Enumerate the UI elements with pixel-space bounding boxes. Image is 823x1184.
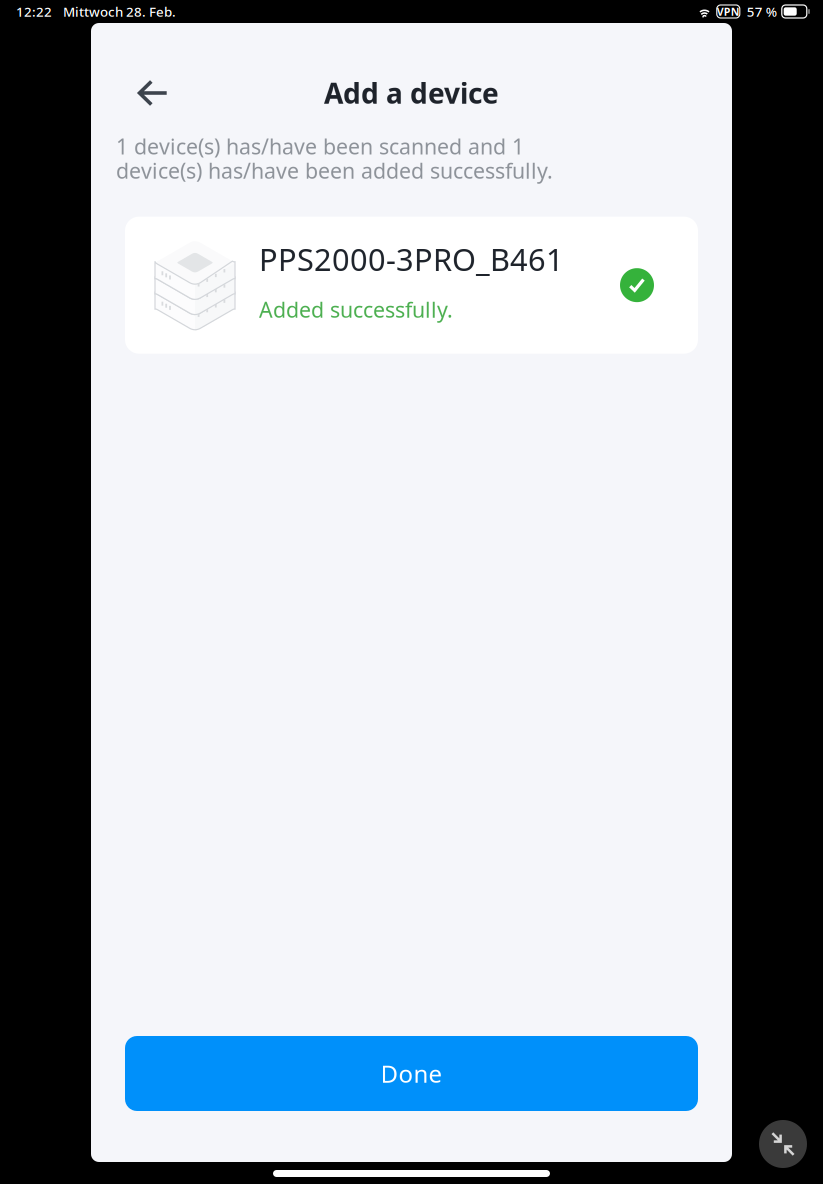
staticText: Add a device	[324, 74, 499, 112]
staticText: 57 %	[747, 3, 777, 20]
staticText: 12:22	[16, 3, 52, 20]
button[interactable]: Exit zoomed app	[759, 1120, 807, 1168]
staticText: PPS2000-3PRO_B461	[259, 239, 564, 279]
staticText: Added successfully.	[259, 295, 453, 324]
button[interactable]: Done	[125, 1036, 698, 1111]
button[interactable]: Back	[91, 64, 215, 122]
staticText: 1 device(s) has/have been scanned and 1 …	[116, 132, 553, 185]
staticText: VPN	[717, 4, 740, 19]
staticText: Done	[380, 1058, 442, 1089]
staticText: Mittwoch 28. Feb.	[63, 3, 176, 20]
